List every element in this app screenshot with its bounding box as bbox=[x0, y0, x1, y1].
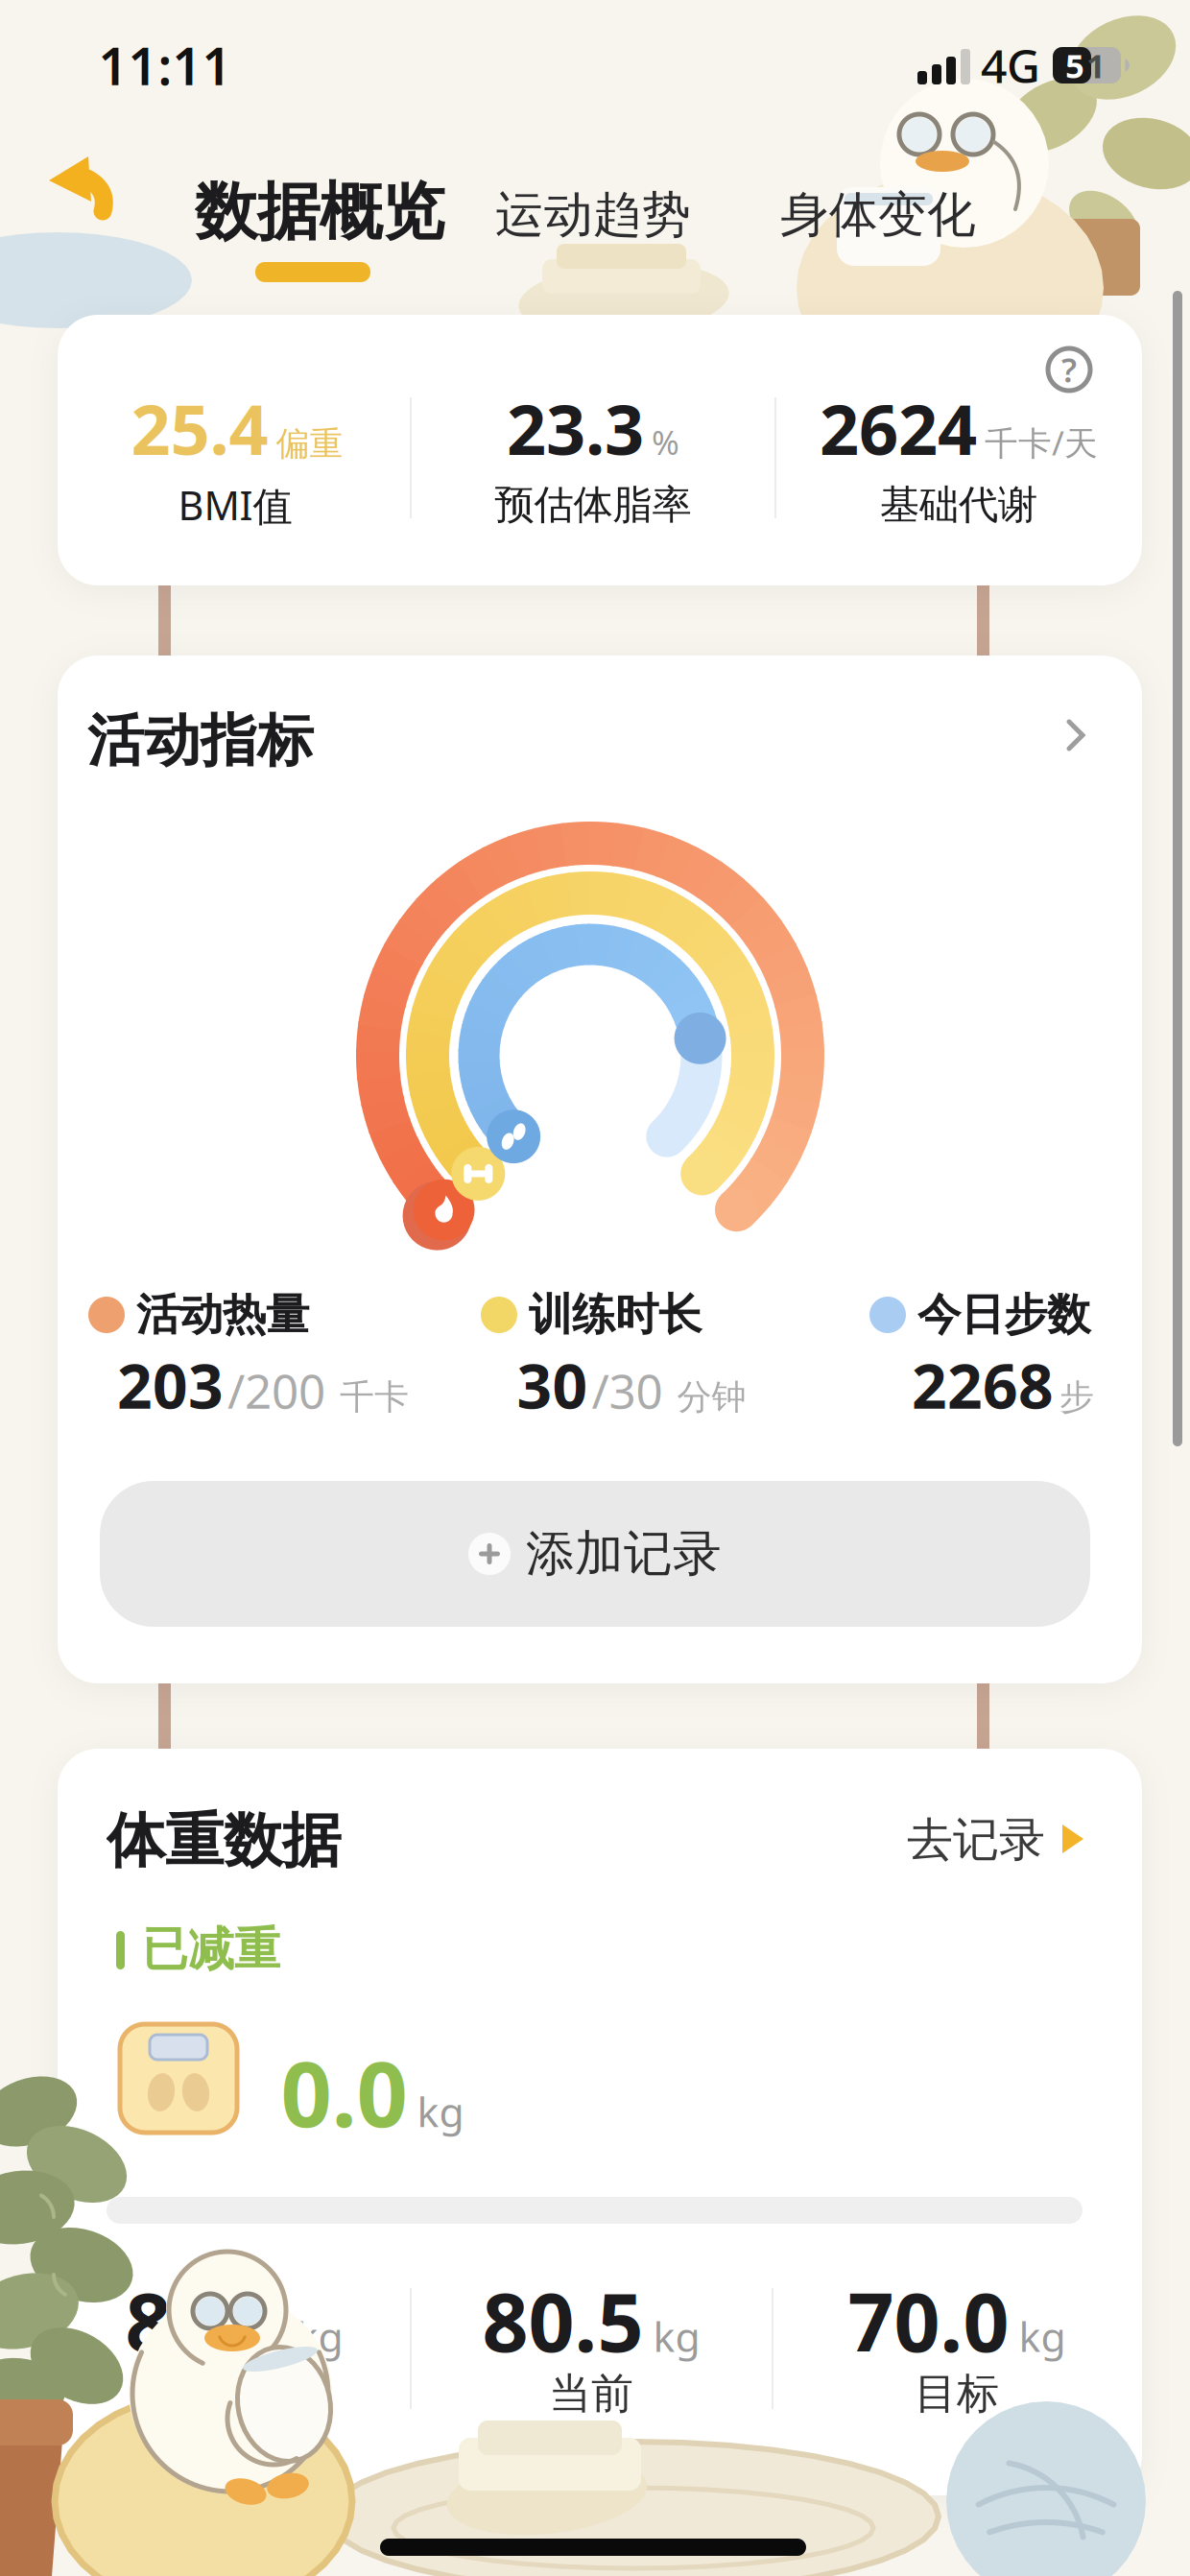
button[interactable]: 去记录 bbox=[907, 1812, 1089, 1868]
staticText: 已减重 bbox=[142, 1921, 280, 1978]
staticText: 70.0 bbox=[848, 2267, 1009, 2374]
staticText: 基础代谢 bbox=[880, 480, 1037, 529]
staticText: 0.0 bbox=[281, 2033, 407, 2152]
staticText: 活动指标 bbox=[87, 706, 314, 776]
staticText: 训练时长 bbox=[529, 1288, 702, 1342]
staticText: 80.5 bbox=[125, 2267, 286, 2374]
staticText: kg bbox=[417, 2084, 464, 2138]
staticText: 2624 bbox=[820, 382, 977, 474]
staticText: 80.5 bbox=[482, 2267, 643, 2374]
staticText: kg bbox=[1019, 2309, 1066, 2363]
button[interactable]: Back bbox=[45, 152, 122, 225]
staticText: 当前 bbox=[549, 2368, 633, 2420]
staticText: 偏重 bbox=[276, 423, 343, 464]
staticText: 千卡/天 bbox=[985, 420, 1098, 465]
staticText: 去记录 bbox=[907, 1812, 1045, 1868]
staticText: 11:11 bbox=[98, 31, 232, 99]
button[interactable]: Help bbox=[1040, 341, 1098, 398]
staticText: 203 bbox=[117, 1344, 224, 1426]
staticText: 步 bbox=[1059, 1376, 1094, 1418]
staticText: 初始 bbox=[192, 2368, 276, 2420]
staticText: 预估体脂率 bbox=[495, 480, 691, 529]
staticText: /200 bbox=[227, 1359, 325, 1422]
staticText: 5 bbox=[1065, 43, 1084, 87]
staticText: 体重数据 bbox=[107, 1805, 341, 1877]
staticText: 分钟 bbox=[666, 1376, 746, 1418]
button[interactable]: 活动指标详情 bbox=[1058, 716, 1096, 754]
staticText: kg bbox=[653, 2309, 700, 2363]
staticText: BMI值 bbox=[178, 478, 292, 531]
staticText: 1 bbox=[1086, 43, 1106, 87]
staticText: 身体变化 bbox=[780, 185, 976, 245]
staticText: 千卡 bbox=[329, 1376, 409, 1418]
button[interactable]: 添加记录 bbox=[100, 1481, 1090, 1627]
staticText: /30 bbox=[592, 1359, 663, 1422]
staticText: ? bbox=[1061, 347, 1077, 392]
button[interactable]: 运动趋势 bbox=[495, 185, 691, 245]
staticText: 25.4 bbox=[131, 382, 268, 474]
staticText: 运动趋势 bbox=[495, 185, 691, 245]
staticText: 活动热量 bbox=[136, 1288, 309, 1342]
staticText: 23.3 bbox=[507, 382, 644, 474]
staticText: 数据概览 bbox=[195, 174, 444, 251]
staticText: 4G bbox=[981, 35, 1040, 96]
button[interactable]: 身体变化 bbox=[780, 185, 976, 245]
staticText: 30 bbox=[517, 1344, 588, 1426]
button[interactable]: 数据概览 bbox=[195, 174, 444, 251]
staticText: kg bbox=[296, 2309, 343, 2363]
staticText: 添加记录 bbox=[526, 1524, 722, 1584]
staticText: 今日步数 bbox=[917, 1288, 1090, 1342]
staticText: 2268 bbox=[912, 1344, 1054, 1426]
staticText: 目标 bbox=[915, 2368, 999, 2420]
staticText: % bbox=[652, 420, 679, 464]
